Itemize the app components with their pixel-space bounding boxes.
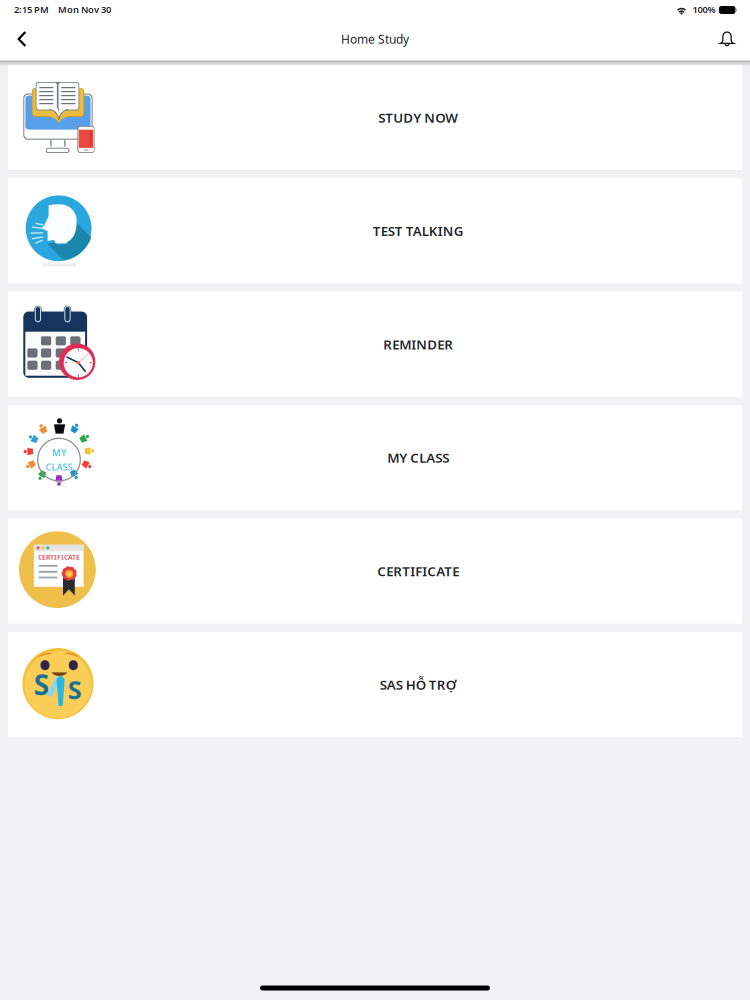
- button[interactable]: MY: [8, 405, 742, 510]
- staticText: MY: [52, 446, 66, 459]
- staticText: CERTIFICATE: [377, 562, 459, 580]
- button[interactable]: REMINDER: [8, 292, 742, 397]
- staticText: 2:15 PM: [14, 3, 49, 16]
- staticText: 100%: [692, 3, 715, 16]
- staticText: S: [68, 673, 82, 706]
- button[interactable]: Notifications: [707, 19, 747, 59]
- staticText: TEST TALKING: [373, 222, 464, 240]
- button[interactable]: S: [8, 632, 742, 737]
- staticText: STUDY NOW: [378, 109, 458, 126]
- button[interactable]: CERTIFICATE: [8, 519, 742, 624]
- staticText: Home Study: [341, 31, 409, 47]
- button[interactable]: Back: [2, 19, 42, 59]
- staticText: MY CLASS: [387, 449, 449, 466]
- staticText: S: [34, 666, 49, 703]
- staticText: Mon Nov 30: [58, 3, 111, 16]
- staticText: REMINDER: [383, 335, 453, 353]
- button[interactable]: TEST TALKING: [8, 178, 742, 283]
- button[interactable]: STUDY NOW: [8, 65, 742, 170]
- staticText: CLASS: [45, 461, 72, 473]
- staticText: CERTIFICATE: [38, 553, 80, 562]
- staticText: SAS HỖ TRỢ: [380, 676, 457, 693]
